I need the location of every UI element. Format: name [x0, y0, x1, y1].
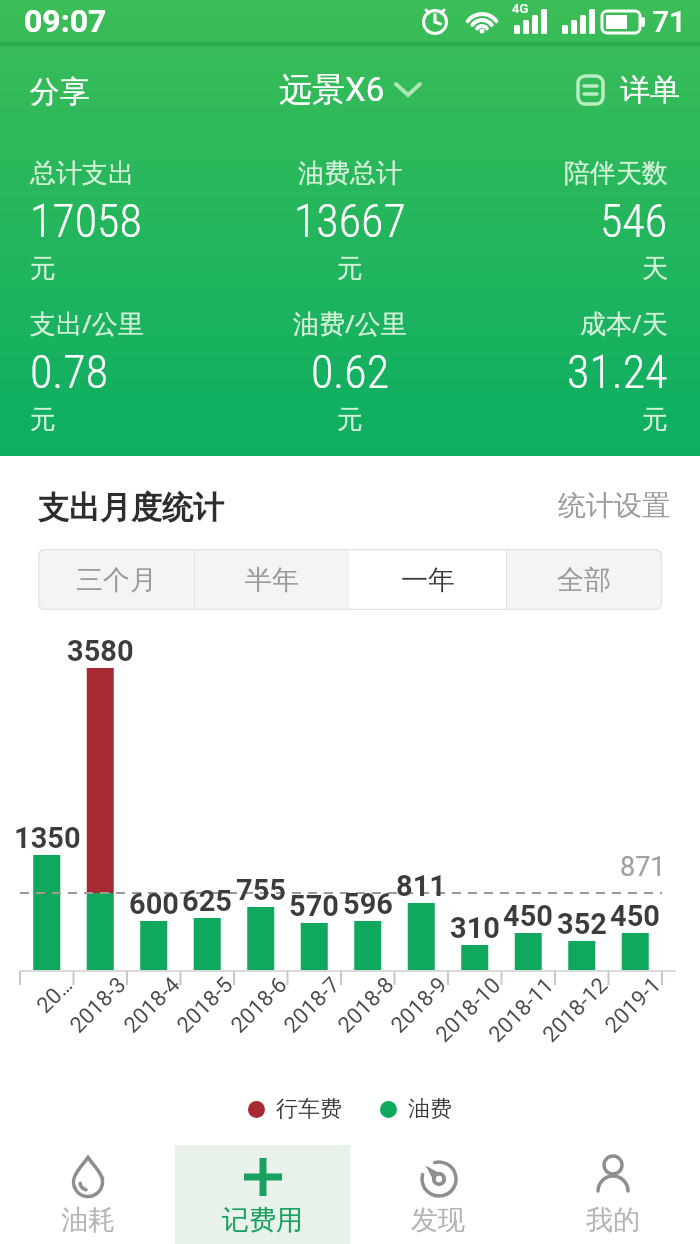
staticText: 分享	[22, 70, 90, 111]
button[interactable]: 统计设置	[530, 484, 670, 526]
staticText: 2018-5	[172, 972, 238, 1038]
staticText: 2018-12	[538, 972, 613, 1048]
button[interactable]: 分享	[6, 62, 106, 118]
staticText: 596	[343, 887, 393, 919]
staticText: 20…	[32, 972, 78, 1019]
staticText: 陪伴天数	[564, 157, 668, 190]
staticText: 31.24	[567, 345, 668, 399]
staticText: 09:07	[24, 2, 107, 40]
staticText: 755	[236, 873, 286, 905]
staticText: 450	[503, 899, 553, 931]
staticText: 油费/公里	[293, 305, 407, 341]
staticText: 546	[600, 194, 668, 248]
staticText: 元	[337, 252, 363, 285]
staticText: 3580	[67, 634, 134, 666]
button[interactable]: 三个月	[38, 549, 194, 610]
staticText: 2018-10	[431, 972, 506, 1048]
staticText: 13667	[294, 194, 406, 248]
staticText: 油费总计	[298, 157, 402, 190]
staticText: 记费用	[222, 1203, 303, 1237]
staticText: 450	[610, 899, 660, 931]
staticText: 全部	[557, 563, 611, 597]
staticText: 4G	[512, 1, 529, 16]
staticText: 310	[450, 911, 500, 943]
staticText: 一年	[401, 563, 455, 597]
staticText: 0.62	[311, 345, 390, 399]
staticText: 2018-4	[119, 972, 185, 1038]
staticText: 详单	[620, 71, 680, 109]
button[interactable]: 详单	[576, 62, 692, 118]
staticText: 2018-11	[484, 972, 559, 1048]
staticText: 支出/公里	[30, 305, 144, 341]
button[interactable]: 我的	[525, 1145, 700, 1244]
staticText: 625	[182, 884, 232, 916]
staticText: 半年	[245, 563, 299, 597]
button[interactable]: 一年	[350, 549, 506, 610]
staticText: 发现	[411, 1203, 465, 1237]
staticText: 远景X6	[279, 69, 385, 111]
staticText: 2018-3	[65, 972, 131, 1038]
staticText: 元	[30, 403, 56, 436]
button[interactable]: 半年	[194, 549, 350, 610]
staticText: 17058	[30, 194, 142, 248]
button[interactable]: 油耗	[0, 1145, 175, 1244]
button[interactable]: 全部	[506, 549, 662, 610]
staticText: 811	[396, 869, 446, 901]
staticText: 元	[337, 403, 363, 436]
staticText: 2018-8	[333, 972, 399, 1038]
staticText: 元	[30, 252, 56, 285]
staticText: 行车费	[276, 1095, 342, 1123]
staticText: 成本/天	[580, 305, 668, 341]
staticText: 570	[289, 889, 339, 921]
staticText: 2018-7	[279, 972, 345, 1038]
staticText: 71	[652, 4, 687, 39]
staticText: 统计设置	[558, 488, 670, 523]
staticText: 油费	[408, 1095, 452, 1123]
staticText: 总计支出	[30, 157, 134, 190]
button[interactable]: 远景X6	[279, 62, 421, 118]
button[interactable]: 记费用	[175, 1145, 350, 1244]
staticText: 2019-1	[600, 972, 666, 1038]
staticText: 天	[642, 252, 668, 285]
staticText: 352	[557, 907, 607, 939]
staticText: 1350	[14, 821, 81, 853]
staticText: 我的	[586, 1203, 640, 1237]
staticText: 2018-9	[386, 972, 452, 1038]
staticText: 元	[642, 403, 668, 436]
staticText: 2018-6	[226, 972, 292, 1038]
button[interactable]: 发现	[350, 1145, 525, 1244]
staticText: 油耗	[61, 1203, 115, 1237]
staticText: 600	[129, 887, 179, 919]
staticText: 三个月	[76, 563, 157, 597]
staticText: 871	[620, 851, 666, 883]
staticText: 0.78	[30, 345, 109, 399]
staticText: 支出月度统计	[38, 488, 224, 527]
